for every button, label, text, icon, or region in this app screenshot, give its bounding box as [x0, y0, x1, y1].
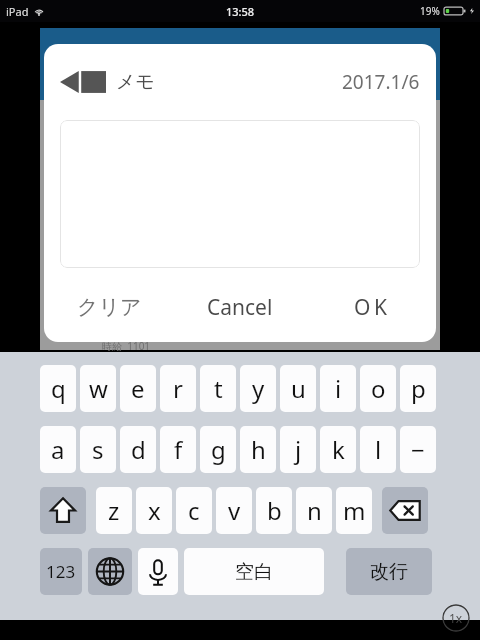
staticText: 空白	[235, 560, 273, 584]
button[interactable]: Cancel	[174, 280, 305, 334]
staticText: o	[371, 372, 386, 405]
staticText: y	[252, 372, 265, 405]
staticText: p	[411, 372, 426, 405]
button[interactable]: q	[40, 365, 76, 412]
button[interactable]: u	[280, 365, 316, 412]
button[interactable]: O	[305, 280, 436, 334]
staticText: t	[214, 372, 223, 405]
button[interactable]	[60, 120, 420, 268]
staticText: n	[307, 494, 322, 527]
staticText: メモ	[116, 70, 155, 94]
button[interactable]: y	[240, 365, 276, 412]
button[interactable]: w	[80, 365, 116, 412]
staticText: x	[148, 494, 161, 527]
staticText: c	[188, 494, 200, 527]
button[interactable]: 1x scale	[442, 604, 470, 632]
button[interactable]: a	[40, 426, 76, 473]
staticText: 19%	[420, 4, 440, 18]
button[interactable]: j	[280, 426, 316, 473]
staticText: w	[89, 372, 108, 405]
staticText: 123	[46, 560, 76, 583]
button[interactable]: h	[240, 426, 276, 473]
button[interactable]: s	[80, 426, 116, 473]
button[interactable]: v	[216, 487, 252, 534]
button[interactable]: クリア	[44, 280, 174, 334]
staticText: 1x	[449, 610, 463, 626]
staticText: 2017.1/6	[342, 69, 420, 95]
staticText: v	[228, 494, 241, 527]
staticText: l	[375, 433, 382, 466]
button[interactable]: z	[96, 487, 132, 534]
button[interactable]: g	[200, 426, 236, 473]
staticText: q	[51, 372, 66, 405]
button[interactable]: i	[320, 365, 356, 412]
staticText: u	[291, 372, 306, 405]
staticText: m	[343, 494, 366, 527]
button[interactable]: 改行	[346, 548, 432, 595]
button[interactable]: p	[400, 365, 436, 412]
button[interactable]: 123	[40, 548, 82, 595]
staticText: g	[211, 433, 226, 466]
button[interactable]: l	[360, 426, 396, 473]
staticText: j	[295, 433, 302, 466]
button[interactable]: f	[160, 426, 196, 473]
staticText: e	[131, 372, 145, 405]
button[interactable]: 空白	[184, 548, 324, 595]
button[interactable]: t	[200, 365, 236, 412]
staticText: h	[251, 433, 266, 466]
staticText: k	[332, 433, 345, 466]
staticText: K	[374, 293, 387, 322]
button[interactable]: c	[176, 487, 212, 534]
staticText: f	[174, 433, 183, 466]
button[interactable]: x	[136, 487, 172, 534]
staticText: a	[51, 433, 65, 466]
button[interactable]: Shift	[40, 487, 86, 534]
button[interactable]: d	[120, 426, 156, 473]
button[interactable]: o	[360, 365, 396, 412]
staticText: iPad	[6, 4, 29, 19]
button[interactable]: メモを編集	[60, 69, 106, 95]
button[interactable]: n	[296, 487, 332, 534]
staticText: クリア	[77, 294, 142, 320]
staticText: s	[92, 433, 104, 466]
staticText: Cancel	[207, 293, 273, 322]
staticText: −	[411, 433, 425, 466]
staticText: d	[131, 433, 146, 466]
button[interactable]: 言語切替	[88, 548, 132, 595]
staticText: 時給 1101	[102, 339, 151, 353]
staticText: z	[108, 494, 120, 527]
staticText: i	[335, 372, 342, 405]
button[interactable]: m	[336, 487, 372, 534]
staticText: O	[354, 293, 371, 322]
staticText: b	[267, 494, 282, 527]
button[interactable]: k	[320, 426, 356, 473]
button[interactable]: 音声入力	[138, 548, 178, 595]
staticText: 13:58	[226, 4, 255, 19]
button[interactable]: −	[400, 426, 436, 473]
button[interactable]: r	[160, 365, 196, 412]
button[interactable]: b	[256, 487, 292, 534]
staticText: 改行	[370, 560, 408, 584]
staticText: r	[173, 372, 183, 405]
button[interactable]: Backspace	[382, 487, 428, 534]
button[interactable]: e	[120, 365, 156, 412]
